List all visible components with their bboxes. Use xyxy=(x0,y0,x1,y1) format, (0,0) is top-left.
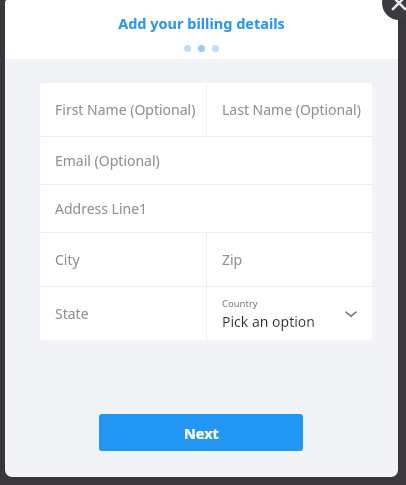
button[interactable]: First Name (Optional) xyxy=(40,83,206,136)
button[interactable]: Close xyxy=(382,0,406,20)
staticText: Add your billing details xyxy=(5,13,398,33)
staticText: Next xyxy=(184,423,219,443)
staticText: State xyxy=(55,304,89,323)
other: Expand country options xyxy=(342,305,360,323)
button[interactable]: City xyxy=(40,233,206,286)
button[interactable]: Zip xyxy=(207,233,372,286)
staticText: Address Line1 xyxy=(55,199,148,218)
staticText: Email (Optional) xyxy=(55,151,160,170)
button[interactable]: Country xyxy=(207,287,372,340)
staticText: Zip xyxy=(222,250,243,269)
button[interactable]: Last Name (Optional) xyxy=(207,83,372,136)
staticText: First Name (Optional) xyxy=(55,100,196,119)
button[interactable]: State xyxy=(40,287,206,340)
button[interactable]: Address Line1 xyxy=(40,185,372,232)
staticText: City xyxy=(55,250,80,269)
button[interactable]: Email (Optional) xyxy=(40,137,372,184)
button[interactable]: Next xyxy=(99,414,303,451)
staticText: Pick an option xyxy=(222,312,315,331)
staticText: Last Name (Optional) xyxy=(222,100,361,119)
staticText: Country xyxy=(222,297,258,310)
